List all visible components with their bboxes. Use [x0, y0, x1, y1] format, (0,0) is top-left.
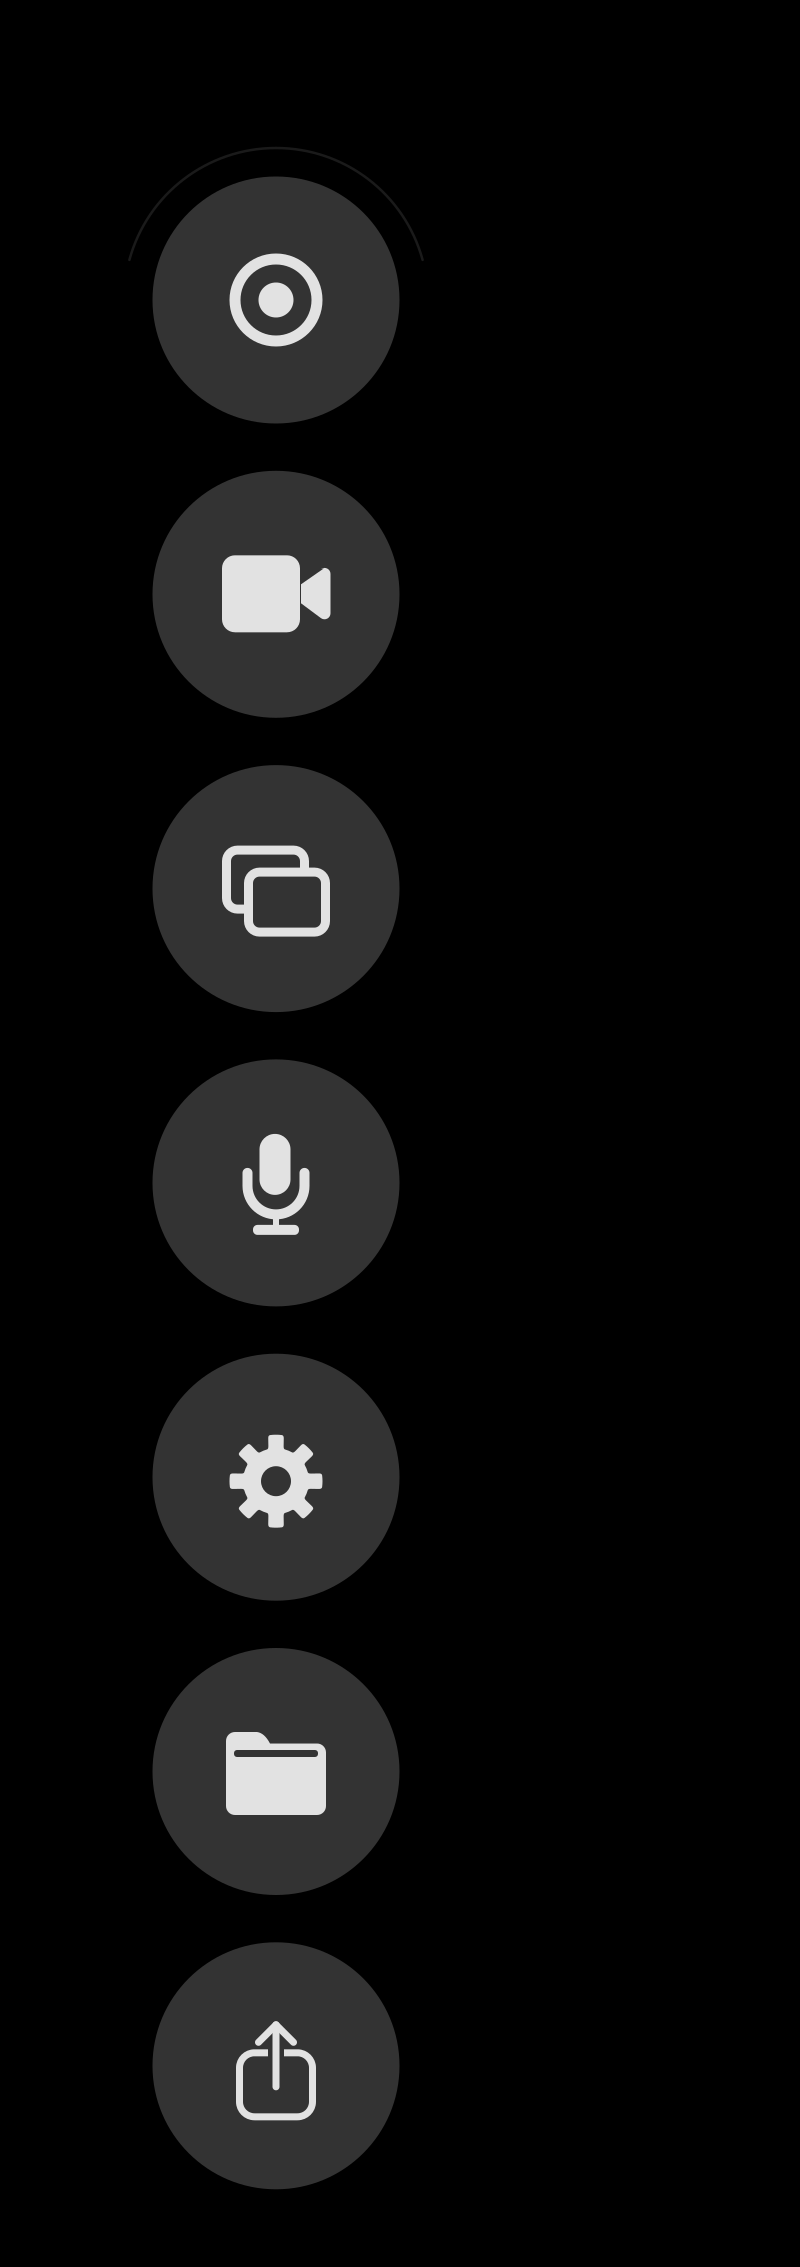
button[interactable]: Files — [152, 1648, 399, 1895]
button[interactable]: Record — [152, 176, 399, 423]
button[interactable]: Microphone — [152, 1059, 399, 1306]
button[interactable]: Settings — [152, 1354, 399, 1601]
button[interactable]: Screen — [152, 765, 399, 1012]
button[interactable]: Share — [152, 1942, 399, 2189]
button[interactable]: Video — [152, 471, 399, 718]
